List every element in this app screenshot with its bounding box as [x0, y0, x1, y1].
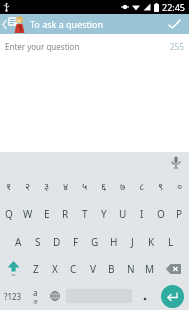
button[interactable]: ५	[75, 172, 94, 200]
button[interactable]	[0, 14, 8, 34]
staticText: ?123	[4, 291, 22, 302]
button[interactable]: G	[85, 228, 104, 255]
button[interactable]: R	[56, 200, 75, 228]
staticText: ५	[82, 179, 88, 193]
staticText: १	[6, 179, 12, 193]
staticText: E	[44, 207, 50, 221]
button[interactable]: K	[142, 228, 161, 255]
button[interactable]	[45, 282, 64, 310]
staticText: O	[157, 207, 165, 221]
button[interactable]	[159, 14, 189, 34]
button[interactable]: ९	[151, 172, 170, 200]
button[interactable]: N	[121, 255, 140, 282]
button[interactable]: W	[18, 200, 37, 228]
staticText: S	[35, 235, 41, 249]
button[interactable]: ८	[132, 172, 151, 200]
staticText: M	[145, 262, 155, 276]
staticText: K	[148, 235, 155, 249]
button[interactable]	[134, 282, 155, 310]
button[interactable]: ७	[113, 172, 132, 200]
button[interactable]: O	[151, 200, 170, 228]
button[interactable]: B	[102, 255, 121, 282]
button[interactable]	[155, 282, 189, 310]
staticText: N	[127, 262, 135, 276]
button[interactable]: Y	[94, 200, 113, 228]
button[interactable]: E	[37, 200, 56, 228]
button[interactable]: U	[113, 200, 132, 228]
staticText: C	[70, 262, 77, 276]
staticText: ७	[120, 179, 126, 193]
button[interactable]: F	[66, 228, 85, 255]
staticText: Y	[101, 207, 107, 221]
staticText: ९	[158, 179, 164, 193]
button[interactable]: ४	[56, 172, 75, 200]
staticText: I	[140, 207, 144, 221]
button[interactable]: T	[75, 200, 94, 228]
button[interactable]: १	[0, 172, 18, 200]
staticText: अ	[33, 298, 38, 306]
button[interactable]	[64, 282, 134, 310]
button[interactable]: ०	[170, 172, 189, 200]
button[interactable]: Z	[26, 255, 45, 282]
staticText: R	[62, 207, 69, 221]
button[interactable]: M	[140, 255, 159, 282]
staticText: To ask a question	[30, 18, 104, 30]
button[interactable]: X	[45, 255, 64, 282]
button[interactable]: C	[64, 255, 83, 282]
button[interactable]: a	[26, 282, 45, 310]
staticText: F	[73, 235, 79, 249]
staticText: ४	[63, 179, 69, 193]
button[interactable]: ६	[94, 172, 113, 200]
button[interactable]	[163, 152, 189, 172]
staticText: a	[33, 287, 38, 298]
staticText: Z	[33, 262, 39, 276]
button[interactable]: I	[132, 200, 151, 228]
staticText: 22:45	[162, 1, 186, 13]
button[interactable]: Q	[0, 200, 18, 228]
staticText: U	[119, 207, 127, 221]
button[interactable]: ?123	[0, 282, 26, 310]
staticText: V	[90, 262, 96, 276]
staticText: 255	[170, 41, 184, 52]
staticText: ८	[139, 179, 145, 193]
staticText: W	[23, 207, 33, 221]
staticText: J	[131, 235, 134, 249]
staticText: ०	[177, 179, 183, 193]
button[interactable]: V	[83, 255, 102, 282]
staticText: P	[176, 207, 183, 221]
staticText: Q	[5, 207, 13, 221]
button[interactable]: A	[9, 228, 28, 255]
staticText: २	[25, 179, 31, 193]
button[interactable]: D	[47, 228, 66, 255]
staticText: B	[108, 262, 115, 276]
staticText: D	[53, 235, 61, 249]
staticText: T	[82, 207, 88, 221]
staticText: A	[15, 235, 22, 249]
staticText: Enter your question	[5, 41, 80, 52]
button[interactable]: Enter your question	[0, 34, 189, 52]
staticText: G	[91, 235, 99, 249]
button[interactable]: H	[104, 228, 123, 255]
button[interactable]	[0, 255, 26, 282]
staticText: X	[52, 262, 58, 276]
button[interactable]: L	[161, 228, 180, 255]
button[interactable]: S	[28, 228, 47, 255]
staticText: ६	[101, 179, 107, 193]
button[interactable]: ३	[37, 172, 56, 200]
staticText: H	[110, 235, 118, 249]
button[interactable]	[159, 255, 189, 282]
button[interactable]: P	[170, 200, 189, 228]
staticText: L	[168, 235, 174, 249]
button[interactable]: २	[18, 172, 37, 200]
staticText: ३	[44, 179, 50, 193]
button[interactable]: J	[123, 228, 142, 255]
